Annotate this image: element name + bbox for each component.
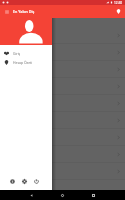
- button[interactable]: Diş Kliniği: [0, 129, 125, 145]
- button[interactable]: Hesap Özeti: [0, 58, 52, 67]
- button[interactable]: Ana ekran: [47, 190, 78, 200]
- button[interactable]: Geri: [16, 190, 47, 200]
- button[interactable]: Diş Kliniği: [0, 163, 125, 179]
- staticText: Diş Kliniği: [5, 63, 25, 69]
- button[interactable]: Son uygulamalar: [78, 190, 109, 200]
- button[interactable]: Diş Kliniği: [0, 61, 125, 77]
- button[interactable]: Ayarlar: [20, 177, 28, 185]
- staticText: 1.1 km uzaklıkta: [5, 36, 31, 41]
- staticText: En Yakın Diş: [13, 9, 35, 14]
- button[interactable]: Diş Kliniği: [0, 95, 125, 111]
- button[interactable]: Giriş: [0, 49, 52, 58]
- button[interactable]: Diş Kliniği: [0, 78, 125, 94]
- button[interactable]: Çıkış: [32, 177, 40, 185]
- button[interactable]: Diş Kliniği: [0, 112, 125, 128]
- staticText: Hesap Özeti: [13, 60, 33, 65]
- button[interactable]: Konum: [112, 5, 125, 18]
- button[interactable]: Hakkında: [8, 177, 16, 185]
- button[interactable]: Diş Kliniği: [0, 44, 125, 60]
- staticText: Diş Kliniği: [5, 46, 25, 52]
- staticText: 1.2 km uzaklıkta: [5, 53, 31, 58]
- staticText: Giriş: [13, 51, 21, 56]
- staticText: Diş Kliniği: [5, 29, 25, 35]
- button[interactable]: Diş Kliniği: [0, 27, 125, 43]
- staticText: 12:30: [114, 1, 123, 5]
- button[interactable]: Menü: [0, 5, 13, 18]
- button[interactable]: Diş Kliniği: [0, 146, 125, 162]
